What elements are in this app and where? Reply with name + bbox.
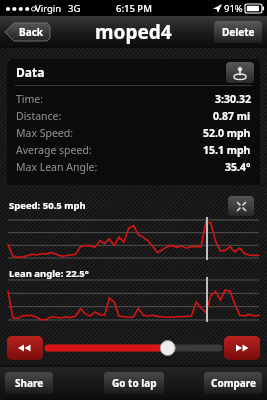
button[interactable]: Expand graph xyxy=(228,196,254,216)
staticText: Speed: 50.5 mph xyxy=(9,199,86,212)
staticText: 91% xyxy=(224,2,243,15)
staticText: moped4 xyxy=(95,19,172,45)
staticText: Delete xyxy=(222,25,255,39)
staticText: Share xyxy=(15,376,44,390)
staticText: Go to lap xyxy=(112,376,157,390)
staticText: Max Lean Angle: xyxy=(16,160,98,174)
button[interactable]: Go to lap xyxy=(104,372,164,394)
button[interactable]: Delete xyxy=(214,21,262,43)
staticText: 52.0 mph xyxy=(203,126,251,140)
button[interactable]: Compare xyxy=(204,372,262,394)
staticText: 0.87 mi xyxy=(213,109,251,123)
staticText: Max Speed: xyxy=(16,126,74,140)
staticText: Data xyxy=(16,64,45,80)
staticText: Lean angle: 22.5° xyxy=(9,267,89,280)
staticText: 3G xyxy=(68,2,81,15)
staticText: 3:30.32 xyxy=(215,92,251,106)
button[interactable]: Show map xyxy=(226,62,254,83)
button[interactable]: Back xyxy=(5,21,51,43)
staticText: 35.4° xyxy=(225,160,251,174)
button[interactable] xyxy=(48,338,219,358)
staticText: 6:15 PM xyxy=(116,2,152,15)
staticText: Compare xyxy=(211,376,256,390)
staticText: Average speed: xyxy=(16,143,92,157)
staticText: Time: xyxy=(16,92,44,106)
staticText: Distance: xyxy=(16,109,62,123)
staticText: 15.1 mph xyxy=(203,143,251,157)
button[interactable]: Rewind xyxy=(7,336,43,360)
staticText: Back xyxy=(19,25,43,39)
staticText: Virgin xyxy=(35,2,62,15)
button[interactable]: Share xyxy=(5,372,53,394)
button[interactable]: Fast forward xyxy=(224,336,260,360)
